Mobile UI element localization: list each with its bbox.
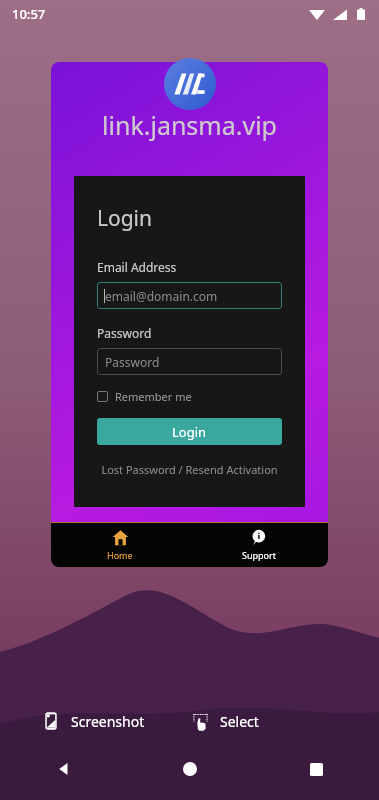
staticText: Screenshot — [71, 712, 145, 731]
staticText: 10:57 — [12, 5, 46, 23]
staticText: Email Address — [97, 259, 177, 275]
staticText: link.jansma.vip — [51, 108, 328, 142]
staticText: Lost Password / Resend Activation — [101, 462, 278, 477]
button[interactable]: Home — [127, 746, 253, 792]
button[interactable]: Support — [189, 523, 328, 567]
button[interactable]: Login — [97, 418, 282, 445]
button[interactable]: Recent apps — [253, 746, 379, 792]
staticText: Login — [172, 423, 207, 441]
staticText: Home — [107, 549, 133, 561]
other: App logo — [164, 58, 216, 110]
staticText: Password — [97, 325, 152, 341]
button[interactable]: email@domain.com — [97, 282, 282, 309]
button[interactable]: Password — [97, 348, 282, 375]
staticText: Support — [242, 549, 276, 561]
button[interactable]: Home — [51, 523, 189, 567]
staticText: email@domain.com — [105, 288, 218, 304]
button[interactable]: Back — [0, 746, 127, 792]
button[interactable]: Lost Password / Resend Activation — [97, 462, 282, 477]
staticText: Select — [220, 712, 259, 731]
staticText: Password — [105, 354, 160, 370]
button[interactable]: Screenshot — [40, 710, 189, 732]
button[interactable]: Remember me — [97, 389, 192, 404]
staticText: Remember me — [115, 389, 192, 404]
button[interactable]: Select — [189, 710, 339, 732]
staticText: Login — [97, 204, 153, 233]
